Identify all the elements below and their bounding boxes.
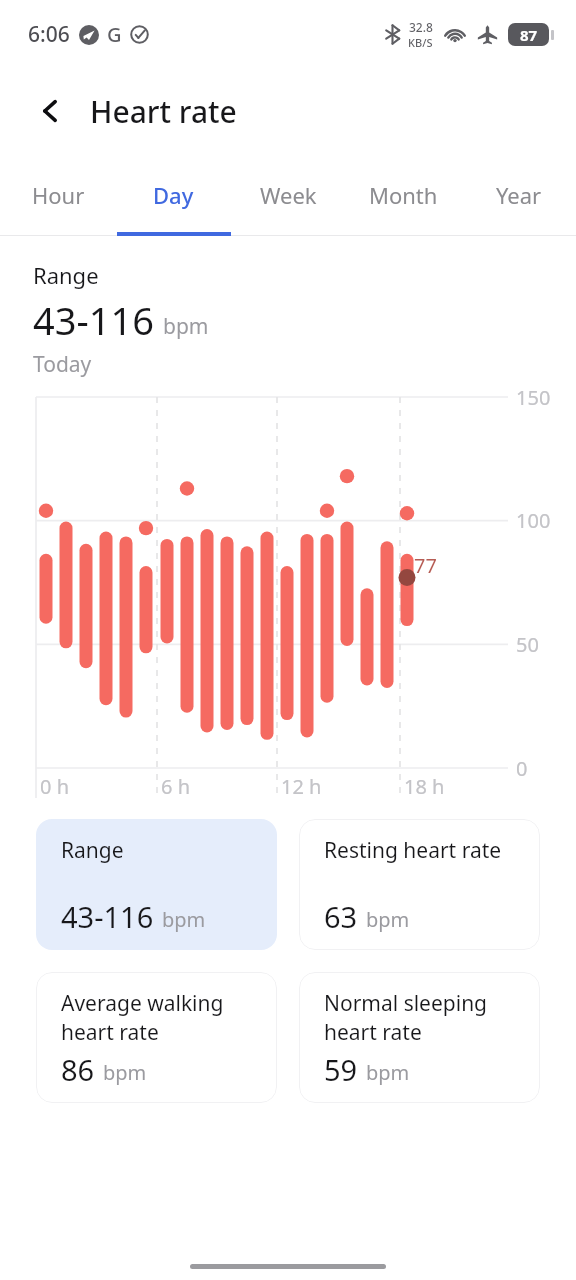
staticText: 77 (414, 552, 437, 579)
staticText: 0 h (40, 773, 69, 800)
staticText: G (107, 21, 122, 48)
staticText: 6 h (161, 773, 190, 800)
staticText: heart rate (61, 1018, 159, 1047)
button[interactable]: Resting heart rate (299, 819, 540, 950)
staticText: 6:06 (28, 20, 70, 49)
staticText: 0 (516, 755, 528, 782)
staticText: Resting heart rate (324, 836, 502, 865)
staticText: 18 h (404, 773, 445, 800)
button[interactable]: Range (36, 819, 277, 950)
button[interactable]: Day (116, 154, 231, 236)
staticText: 50 (516, 631, 539, 658)
staticText: bpm (366, 906, 410, 933)
staticText: Hour (32, 180, 85, 210)
button[interactable]: Normal sleeping (299, 972, 540, 1103)
button[interactable]: Hour (0, 154, 116, 236)
staticText: Month (369, 180, 438, 210)
staticText: Range (33, 260, 99, 290)
staticText: 63 (324, 897, 358, 936)
button[interactable]: Year (461, 154, 576, 236)
staticText: Year (496, 180, 542, 210)
staticText: 12 h (281, 773, 322, 800)
staticText: 100 (516, 507, 551, 534)
staticText: Day (153, 180, 194, 210)
staticText: 59 (324, 1050, 358, 1089)
staticText: Heart rate (90, 91, 237, 132)
staticText: Week (260, 180, 317, 210)
button[interactable]: Month (346, 154, 461, 236)
staticText: heart rate (324, 1018, 422, 1047)
staticText: 43-116 (61, 897, 154, 936)
staticText: bpm (163, 312, 209, 341)
staticText: bpm (366, 1059, 410, 1086)
button[interactable]: Average walking (36, 972, 277, 1103)
button[interactable]: Week (231, 154, 346, 236)
staticText: 43-116 (33, 294, 154, 346)
staticText: 150 (516, 384, 551, 411)
staticText: Normal sleeping (324, 989, 488, 1018)
staticText: Range (61, 836, 124, 865)
button[interactable]: Back (26, 87, 74, 135)
staticText: KB/S (408, 35, 433, 50)
staticText: 32.8 (409, 19, 433, 35)
staticText: 86 (61, 1050, 95, 1089)
staticText: 87 (520, 25, 538, 45)
staticText: bpm (103, 1059, 147, 1086)
staticText: Today (33, 350, 92, 379)
staticText: bpm (162, 906, 206, 933)
staticText: Average walking (61, 989, 224, 1018)
